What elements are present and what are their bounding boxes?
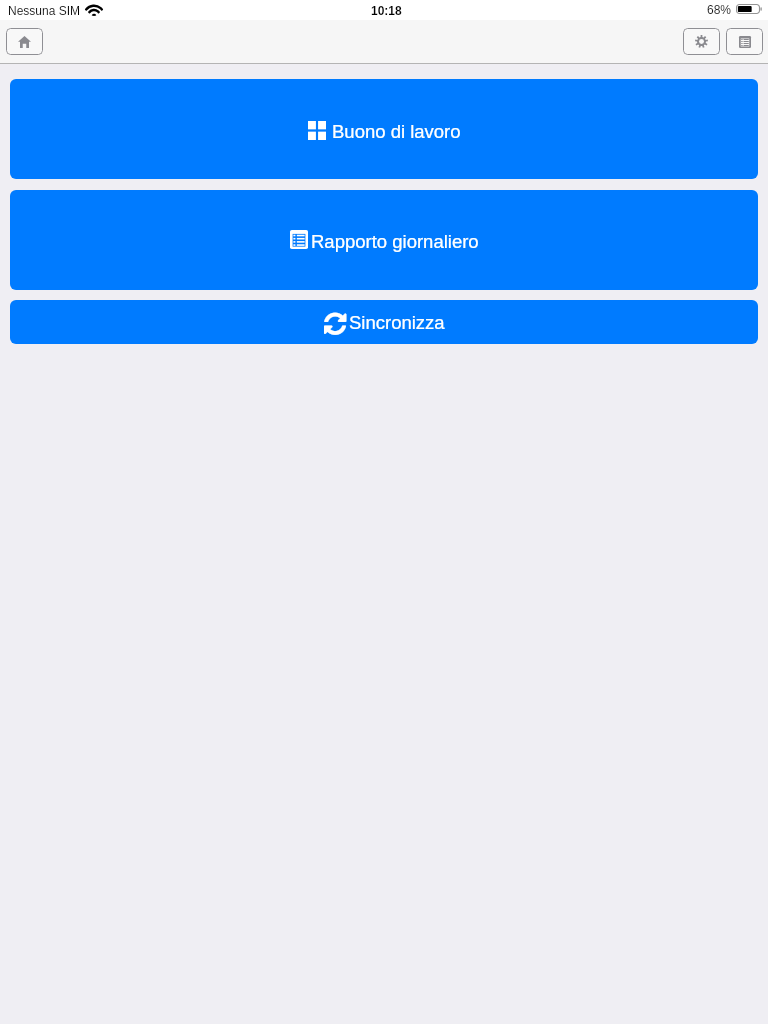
- button[interactable]: Rapporto giornaliero: [10, 190, 758, 290]
- staticText: Sincronizza: [349, 312, 445, 333]
- staticText: 68%: [707, 3, 732, 16]
- staticText: Buono di lavoro: [332, 121, 461, 142]
- button[interactable]: Buono di lavoro: [10, 79, 758, 179]
- button[interactable]: : [10, 300, 758, 344]
- button[interactable]: Saved reports: [726, 28, 763, 55]
- staticText: Rapporto giornaliero: [311, 231, 479, 252]
- staticText: Nessuna SIM: [8, 4, 81, 17]
- staticText: 10:18: [371, 4, 402, 17]
- button[interactable]: Settings: [683, 28, 720, 55]
- button[interactable]: Home: [6, 28, 43, 55]
- staticText: : [324, 311, 347, 337]
